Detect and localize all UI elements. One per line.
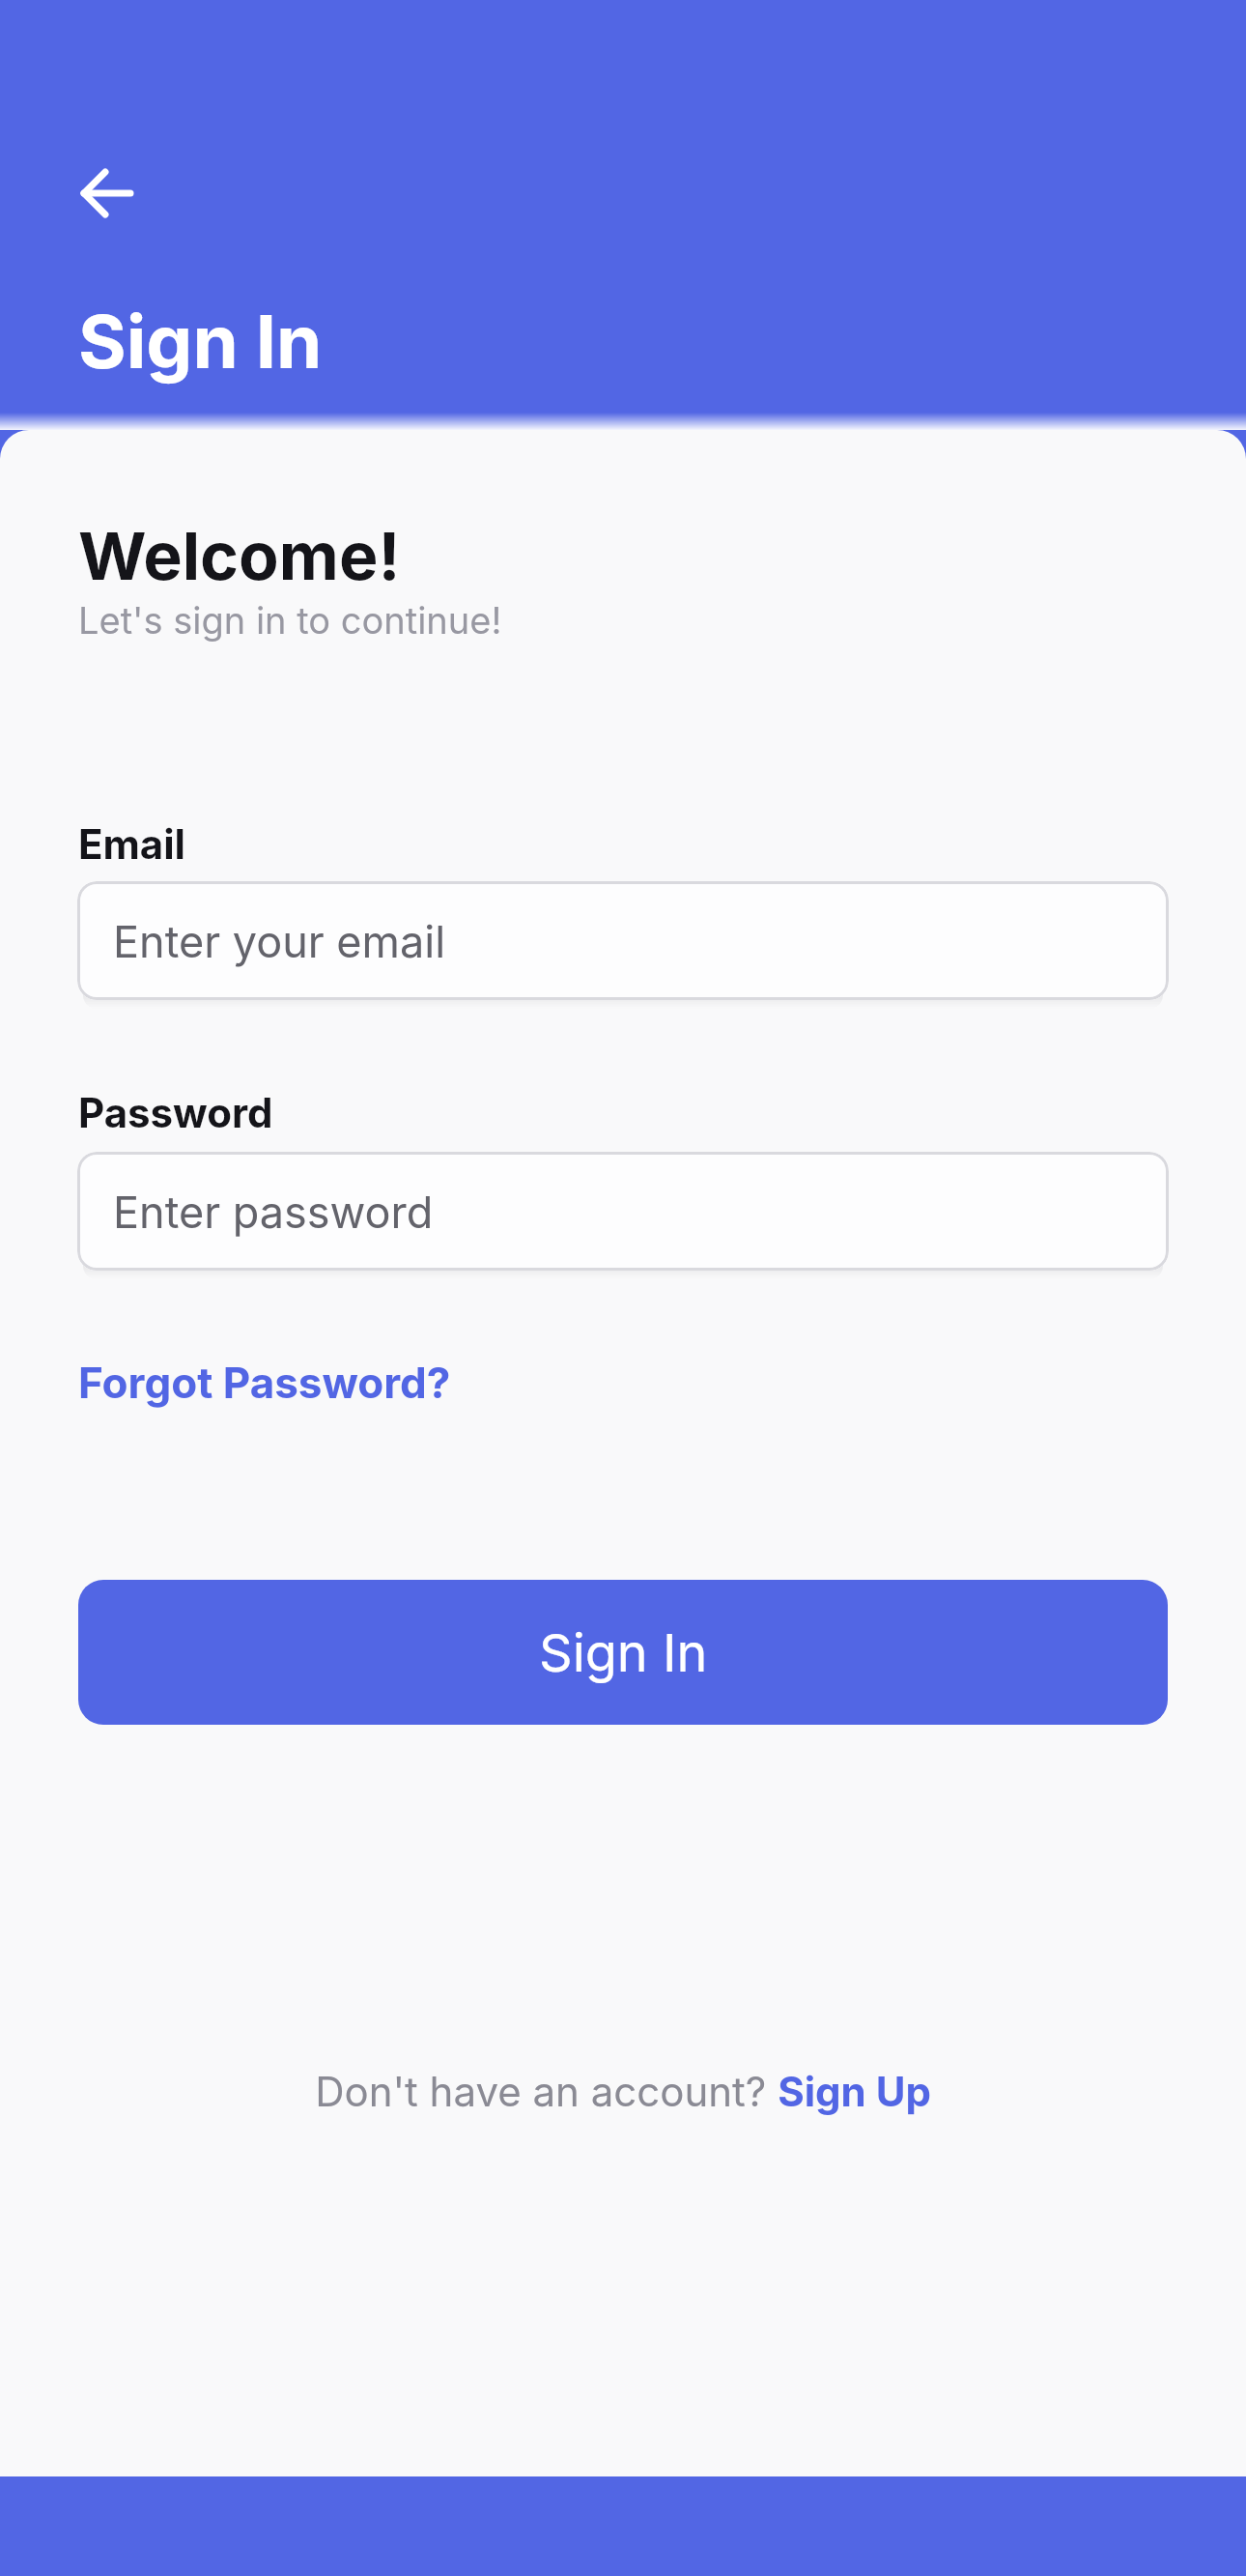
staticText: Enter password <box>113 1186 434 1238</box>
staticText: Sign In <box>78 297 323 386</box>
staticText: Enter your email <box>113 915 446 967</box>
staticText: Don't have an account? Sign Up <box>315 2067 931 2116</box>
staticText: Email <box>78 819 185 869</box>
staticText: Sign In <box>539 1621 708 1684</box>
button[interactable]: Forgot Password? <box>78 1357 451 1408</box>
button[interactable]: Enter password <box>77 1152 1169 1271</box>
staticText: Welcome! <box>78 516 401 595</box>
button[interactable]: Sign In <box>78 1580 1168 1725</box>
button[interactable]: Don't have an account? Sign Up <box>315 2067 931 2116</box>
button[interactable] <box>53 140 159 246</box>
button[interactable]: Enter your email <box>77 881 1169 1000</box>
staticText: Password <box>78 1088 273 1137</box>
staticText: Let's sign in to continue! <box>78 598 502 643</box>
